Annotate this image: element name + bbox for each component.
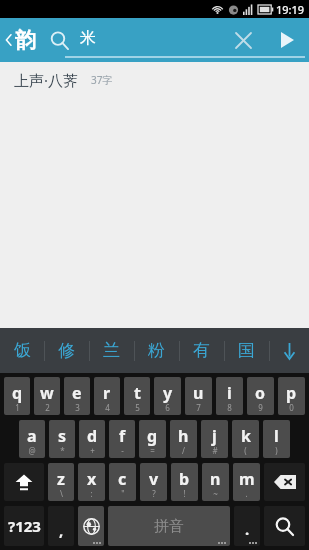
button[interactable]: f: [109, 420, 135, 458]
staticText: ?: [152, 488, 156, 499]
button[interactable]: Search: [42, 23, 76, 57]
button[interactable]: l: [263, 420, 290, 458]
button[interactable]: o: [247, 377, 274, 415]
staticText: s: [58, 425, 67, 447]
staticText: :: [90, 488, 93, 499]
button[interactable]: .: [234, 506, 260, 546]
staticText: 修: [58, 340, 75, 361]
button[interactable]: s: [49, 420, 75, 458]
button[interactable]: n: [202, 463, 229, 501]
staticText: #: [212, 445, 218, 456]
staticText: 7: [196, 402, 201, 413]
button[interactable]: r: [94, 377, 120, 415]
button[interactable]: 兰: [89, 328, 134, 373]
staticText: i: [227, 382, 232, 404]
button[interactable]: 上声·八荠: [0, 62, 309, 98]
staticText: 1: [15, 402, 20, 413]
button[interactable]: 饭: [0, 328, 44, 373]
staticText: a: [27, 425, 37, 447]
staticText: 米: [80, 28, 96, 48]
button[interactable]: t: [124, 377, 150, 415]
staticText: @: [28, 445, 36, 456]
button[interactable]: Search: [264, 506, 305, 546]
button[interactable]: b: [171, 463, 198, 501]
button[interactable]: e: [64, 377, 90, 415]
staticText: n: [210, 468, 221, 490]
button[interactable]: Change keyboard language: [78, 506, 104, 546]
staticText: .: [245, 519, 250, 539]
button[interactable]: w: [34, 377, 60, 415]
staticText: r: [103, 382, 111, 404]
button[interactable]: p: [278, 377, 305, 415]
staticText: 韵: [15, 27, 36, 53]
button[interactable]: z: [48, 463, 74, 501]
button[interactable]: Back: [0, 18, 42, 62]
button[interactable]: k: [232, 420, 259, 458]
button[interactable]: y: [154, 377, 181, 415]
button[interactable]: q: [4, 377, 30, 415]
button[interactable]: Backspace: [264, 463, 305, 501]
button[interactable]: i: [216, 377, 243, 415]
staticText: w: [40, 382, 54, 404]
button[interactable]: v: [140, 463, 167, 501]
staticText: ": [121, 488, 125, 499]
staticText: .: [245, 488, 248, 499]
staticText: 上声·八荠: [14, 70, 79, 90]
button[interactable]: d: [79, 420, 105, 458]
staticText: 8: [227, 402, 232, 413]
other: Back: [5, 33, 12, 47]
button[interactable]: ?123: [4, 506, 44, 546]
staticText: b: [179, 468, 190, 490]
staticText: 37字: [91, 73, 113, 87]
staticText: 国: [238, 340, 255, 361]
staticText: d: [87, 425, 98, 447]
staticText: !: [183, 488, 186, 499]
button[interactable]: m: [233, 463, 260, 501]
staticText: 4: [105, 402, 110, 413]
staticText: o: [255, 382, 266, 404]
button[interactable]: More candidates: [269, 328, 309, 373]
staticText: 有: [193, 340, 210, 361]
button[interactable]: g: [139, 420, 166, 458]
button[interactable]: 国: [224, 328, 269, 373]
button[interactable]: j: [201, 420, 228, 458]
staticText: u: [193, 382, 204, 404]
button[interactable]: Shift: [4, 463, 44, 501]
staticText: e: [72, 382, 82, 404]
staticText: 拼音: [154, 517, 184, 536]
staticText: f: [119, 425, 126, 447]
staticText: ~: [213, 488, 218, 499]
staticText: +: [90, 445, 95, 456]
staticText: h: [178, 425, 189, 447]
button[interactable]: Clear: [221, 18, 265, 62]
staticText: 3: [75, 402, 80, 413]
button[interactable]: 粉: [134, 328, 179, 373]
staticText: 6: [165, 402, 170, 413]
staticText: x: [87, 468, 97, 490]
staticText: 9: [258, 402, 263, 413]
staticText: z: [57, 468, 65, 490]
button[interactable]: x: [78, 463, 105, 501]
button[interactable]: a: [19, 420, 45, 458]
button[interactable]: Go: [265, 18, 309, 62]
staticText: /: [182, 445, 185, 456]
staticText: g: [147, 425, 158, 447]
staticText: y: [163, 382, 173, 404]
staticText: \: [60, 488, 63, 499]
button[interactable]: Space: [108, 506, 230, 546]
button[interactable]: c: [109, 463, 136, 501]
staticText: ,: [59, 520, 64, 540]
button[interactable]: h: [170, 420, 197, 458]
button[interactable]: ,: [48, 506, 74, 546]
staticText: j: [212, 425, 217, 447]
button[interactable]: 有: [179, 328, 224, 373]
staticText: 兰: [103, 340, 120, 361]
button[interactable]: 修: [44, 328, 89, 373]
staticText: ?123: [8, 516, 41, 536]
staticText: 5: [135, 402, 140, 413]
staticText: 粉: [148, 340, 165, 361]
button[interactable]: u: [185, 377, 212, 415]
staticText: q: [12, 382, 23, 404]
staticText: -: [121, 445, 124, 456]
staticText: p: [286, 382, 297, 404]
